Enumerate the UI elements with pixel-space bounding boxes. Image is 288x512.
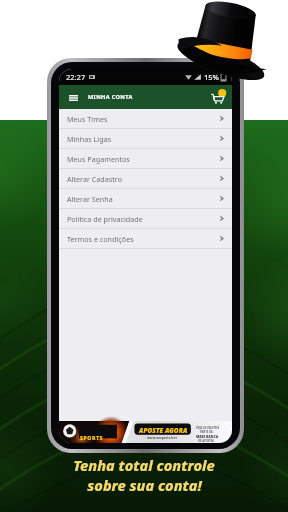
staticText: PARTE DA bbox=[200, 430, 213, 434]
button[interactable]: Política de privacidade bbox=[59, 209, 232, 228]
staticText: VEJA OS PALPITES bbox=[196, 426, 220, 430]
staticText: Tenha total controle bbox=[73, 455, 215, 475]
button[interactable]: Minhas Ligas bbox=[59, 129, 232, 148]
staticText: www.xxsports.bet bbox=[147, 435, 177, 439]
staticText: sobre sua conta! bbox=[87, 475, 202, 495]
staticText: Termos e condições bbox=[67, 234, 134, 244]
staticText: Alterar Cadastro bbox=[67, 174, 123, 184]
staticText: Minhas Ligas bbox=[67, 134, 112, 144]
button[interactable]: Meus Times bbox=[59, 109, 232, 128]
button[interactable]: Alterar Senha bbox=[59, 189, 232, 208]
staticText: SPORTS bbox=[80, 434, 103, 441]
button[interactable]: Open navigation menu bbox=[65, 89, 82, 106]
staticText: Meus Times bbox=[67, 114, 108, 124]
staticText: APOSTE AGORA bbox=[139, 426, 188, 435]
button[interactable]: Aposte agora advertisement bbox=[59, 421, 232, 443]
staticText: Meus Pagamentos bbox=[67, 154, 130, 164]
staticText: MINHA CONTA bbox=[88, 93, 133, 101]
staticText: 22:27 bbox=[66, 72, 86, 82]
staticText: Alterar Senha bbox=[67, 194, 113, 204]
button[interactable]: Shopping cart bbox=[209, 88, 227, 106]
staticText: DE APOSTAS bbox=[198, 439, 215, 443]
button[interactable]: Alterar Cadastro bbox=[59, 169, 232, 188]
button[interactable]: Meus Pagamentos bbox=[59, 149, 232, 168]
staticText: 15% bbox=[204, 72, 219, 82]
staticText: Política de privacidade bbox=[67, 214, 143, 224]
button[interactable]: Termos e condições bbox=[59, 229, 232, 248]
staticText: MAIS BANCA bbox=[196, 434, 219, 439]
